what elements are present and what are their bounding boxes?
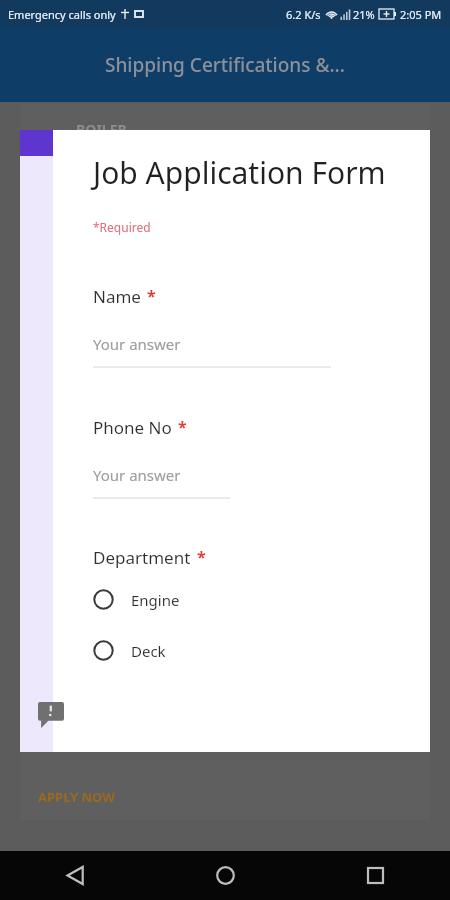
button[interactable]: Home [150, 851, 300, 900]
staticText: Job Application Form [93, 152, 430, 193]
staticText: 6.2 K/s [286, 7, 321, 22]
staticText: * [147, 285, 156, 307]
staticText: Emergency calls only [8, 7, 116, 22]
button[interactable]: Engine [93, 589, 293, 610]
button[interactable]: Back [0, 851, 150, 900]
staticText: Engine [131, 590, 180, 610]
button[interactable]: Recent apps [300, 851, 450, 900]
button[interactable]: Send feedback [38, 702, 64, 728]
staticText: Department [93, 546, 191, 569]
staticText: Shipping Certifications &... [105, 52, 345, 78]
staticText: 21% [353, 7, 375, 22]
staticText: Your answer [93, 334, 181, 354]
staticText: * [178, 416, 187, 438]
staticText: *Required [93, 219, 151, 235]
button[interactable]: Your answer [93, 334, 331, 368]
staticText: BOILER [76, 120, 127, 139]
staticText: Phone No [93, 416, 172, 439]
staticText: Your answer [93, 465, 181, 485]
staticText: Name [93, 285, 141, 308]
button[interactable]: Deck [93, 640, 293, 661]
staticText: Deck [131, 641, 166, 661]
staticText: 2:05 PM [400, 7, 442, 22]
staticText: * [197, 546, 206, 568]
button[interactable]: APPLY NOW [36, 784, 117, 810]
button[interactable]: Your answer [93, 465, 230, 499]
staticText: APPLY NOW [38, 788, 115, 806]
